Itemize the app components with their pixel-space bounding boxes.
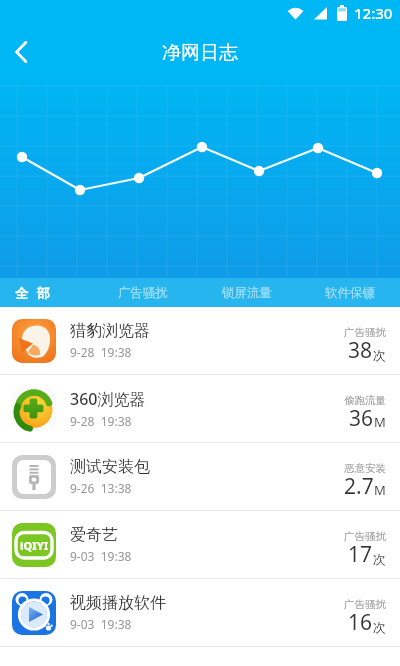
staticText: 部 — [37, 285, 50, 301]
staticText: 2.7 — [344, 472, 374, 501]
staticText: 16 — [348, 608, 373, 637]
staticText: 软件保镖 — [325, 285, 375, 301]
staticText: M — [374, 481, 386, 499]
staticText: 次 — [373, 619, 386, 635]
staticText: 广告骚扰 — [344, 530, 386, 543]
staticText: 360浏览器 — [70, 388, 146, 410]
staticText: 广告骚扰 — [118, 285, 168, 301]
staticText: 猎豹浏览器 — [70, 321, 150, 341]
button[interactable] — [4, 35, 38, 69]
staticText: 36 — [349, 404, 374, 433]
staticText: 9-03 19:38 — [70, 548, 132, 564]
staticText: 9-28 19:38 — [70, 344, 132, 360]
staticText: 恶意安装 — [344, 462, 386, 475]
button[interactable]: 测试安装包 — [0, 443, 400, 511]
staticText: 次 — [373, 347, 386, 363]
staticText: 12:30 — [354, 3, 393, 23]
button[interactable]: iQIYI — [0, 511, 400, 579]
staticText: 广告骚扰 — [344, 598, 386, 611]
staticText: iQIYI — [20, 538, 49, 553]
staticText: 偷跑流量 — [344, 394, 386, 407]
staticText: 9-28 19:38 — [70, 413, 132, 429]
button[interactable]: 360浏览器 — [0, 375, 400, 443]
button[interactable]: 软件保镖 — [325, 285, 375, 301]
staticText: 测试安装包 — [70, 457, 150, 477]
staticText: 净网日志 — [162, 41, 238, 65]
staticText: M — [374, 413, 386, 431]
staticText: 广告骚扰 — [344, 326, 386, 339]
button[interactable]: 广告骚扰 — [118, 285, 168, 301]
staticText: 38 — [348, 336, 373, 365]
staticText: 9-03 19:38 — [70, 616, 132, 632]
staticText: 次 — [373, 551, 386, 567]
staticText: 全 — [15, 285, 28, 301]
staticText: 爱奇艺 — [70, 525, 118, 545]
button[interactable]: 全 — [15, 285, 50, 301]
staticText: 视频播放软件 — [70, 593, 166, 613]
button[interactable]: 锁屏流量 — [222, 285, 272, 301]
button[interactable]: 猎豹浏览器 — [0, 307, 400, 375]
staticText: 锁屏流量 — [222, 285, 272, 301]
button[interactable]: 视频播放软件 — [0, 579, 400, 647]
staticText: 9-26 13:38 — [70, 480, 132, 496]
staticText: 17 — [348, 540, 373, 569]
